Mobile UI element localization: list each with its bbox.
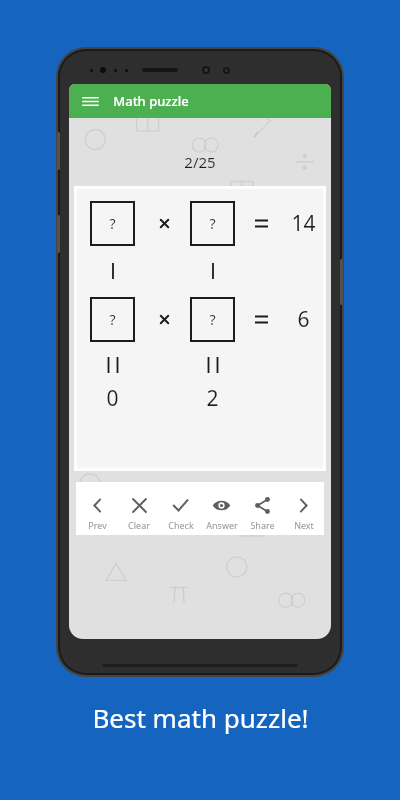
staticText: 2 — [206, 384, 219, 413]
staticText: ? — [209, 214, 216, 233]
staticText: Prev — [88, 519, 107, 531]
button[interactable]: Answer — [201, 487, 242, 531]
staticText: 6 — [297, 305, 310, 334]
button[interactable]: Prev — [76, 487, 118, 531]
button[interactable]: Clear — [118, 487, 160, 531]
staticText: ? — [209, 310, 216, 329]
button[interactable]: Next — [283, 487, 324, 531]
staticText: Answer — [206, 519, 238, 531]
button[interactable]: Unknown value, tap to enter — [190, 297, 235, 342]
staticText: Best math puzzle! — [92, 700, 309, 735]
button[interactable]: Unknown value, tap to enter — [90, 201, 135, 246]
button[interactable]: Share — [242, 487, 283, 531]
staticText: 0 — [106, 384, 119, 413]
button[interactable]: Unknown value, tap to enter — [190, 201, 235, 246]
staticText: ? — [109, 310, 116, 329]
staticText: Clear — [128, 519, 150, 531]
staticText: 2/25 — [184, 152, 216, 172]
staticText: Share — [250, 519, 275, 531]
staticText: Math puzzle — [113, 92, 189, 110]
button[interactable]: Open navigation menu — [77, 88, 103, 114]
staticText: Check — [168, 519, 194, 531]
button[interactable]: Unknown value, tap to enter — [90, 297, 135, 342]
staticText: Next — [294, 519, 314, 531]
button[interactable]: Check — [160, 487, 201, 531]
staticText: 14 — [291, 209, 316, 238]
staticText: ? — [109, 214, 116, 233]
